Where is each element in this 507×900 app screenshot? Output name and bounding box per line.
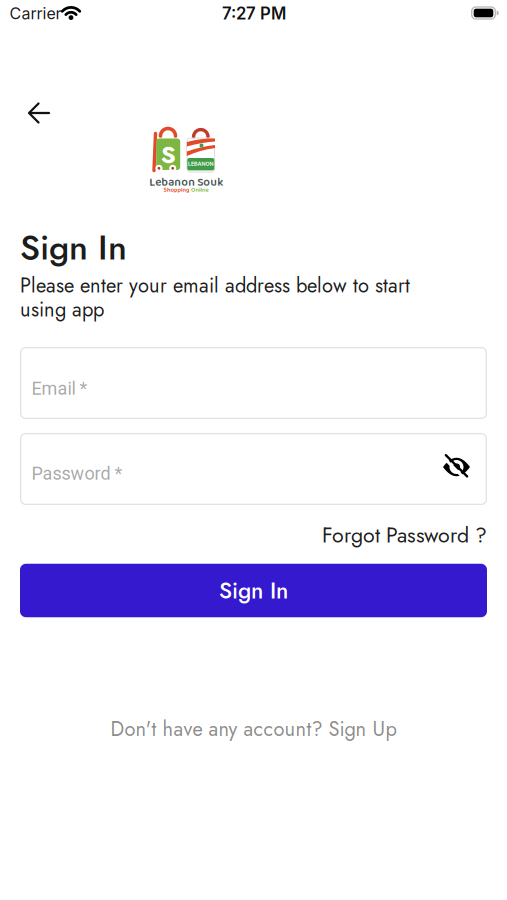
staticText: Sign In bbox=[20, 223, 127, 272]
staticText: Password * bbox=[31, 463, 122, 484]
staticText: Sign Up bbox=[328, 715, 396, 743]
staticText: LEBANON bbox=[175, 157, 226, 170]
staticText: Sign In bbox=[219, 574, 288, 606]
staticText: using app bbox=[20, 295, 104, 324]
staticText: Forgot Password ? bbox=[322, 520, 487, 550]
button[interactable]: Show password bbox=[436, 447, 476, 487]
button[interactable]: Sign Up bbox=[328, 715, 396, 743]
staticText: S bbox=[161, 138, 176, 171]
staticText: Online bbox=[196, 180, 232, 200]
staticText: Carrier bbox=[9, 4, 61, 23]
staticText: Email * bbox=[31, 378, 87, 399]
button[interactable]: Email * bbox=[20, 347, 487, 419]
staticText: Please enter your email address below to… bbox=[20, 271, 410, 300]
button[interactable]: Forgot Password ? bbox=[322, 520, 487, 550]
button[interactable]: Password * bbox=[20, 433, 487, 505]
staticText: Don't have any account? bbox=[110, 715, 328, 743]
staticText: Lebanon Souk bbox=[149, 173, 223, 192]
button[interactable]: Back bbox=[9, 91, 69, 135]
staticText: Shopping bbox=[141, 180, 193, 200]
staticText: 7:27 PM bbox=[222, 3, 286, 24]
button[interactable]: Sign In bbox=[20, 564, 487, 617]
